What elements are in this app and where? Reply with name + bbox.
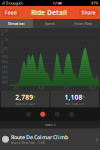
staticText: Elevation [8, 21, 25, 26]
staticText: Feed [4, 9, 16, 16]
staticText: 5.0 [39, 87, 44, 90]
staticText: Route De Colmar Climb [11, 134, 68, 141]
staticText: 17:04 [52, 0, 61, 6]
staticText: 41% [91, 0, 98, 6]
staticText: 400 [2, 81, 8, 84]
staticText: 800 [2, 60, 8, 64]
staticText: Ride Detail [31, 8, 67, 17]
staticText: Heart Rate [74, 21, 92, 26]
staticText: 10.0 [89, 87, 96, 90]
staticText: Speed [44, 21, 54, 26]
staticText: Share [81, 9, 95, 16]
staticText: 1,100 [1, 38, 8, 45]
staticText: RESULTS [45, 123, 55, 126]
staticText: 7.5 [64, 87, 69, 90]
staticText: 500 [2, 76, 8, 79]
staticText: 700 [2, 66, 8, 69]
button[interactable]: Elevation [0, 19, 33, 28]
staticText: MAX ELEVATION [65, 102, 84, 106]
staticText: ft [83, 95, 85, 99]
button[interactable]: Share [79, 9, 98, 16]
button[interactable]: Feed [2, 9, 19, 16]
button[interactable]: Map [22, 108, 35, 121]
staticText: 600 [2, 71, 8, 74]
staticText: ıll Bouygues [2, 0, 23, 6]
staticText: 2.5 [14, 87, 19, 90]
staticText: 1,200 [1, 29, 8, 37]
button[interactable]: Segments [51, 108, 64, 121]
staticText: 1,108 [64, 93, 82, 102]
button[interactable]: Route De Colmar Climb [0, 128, 100, 150]
button[interactable]: Heart Rate [66, 19, 100, 28]
staticText: Second Best Time - 5:48 [11, 141, 45, 145]
staticText: 2,789 [15, 93, 33, 102]
staticText: › [96, 135, 98, 144]
button[interactable]: Analysis [65, 108, 78, 121]
staticText: ft [33, 95, 35, 99]
staticText: 900 [2, 55, 8, 59]
button[interactable]: Photos [36, 108, 49, 121]
staticText: 1,000 [1, 47, 8, 54]
button[interactable]: Speed [33, 19, 66, 28]
staticText: ELEVATION GAIN [15, 102, 35, 106]
